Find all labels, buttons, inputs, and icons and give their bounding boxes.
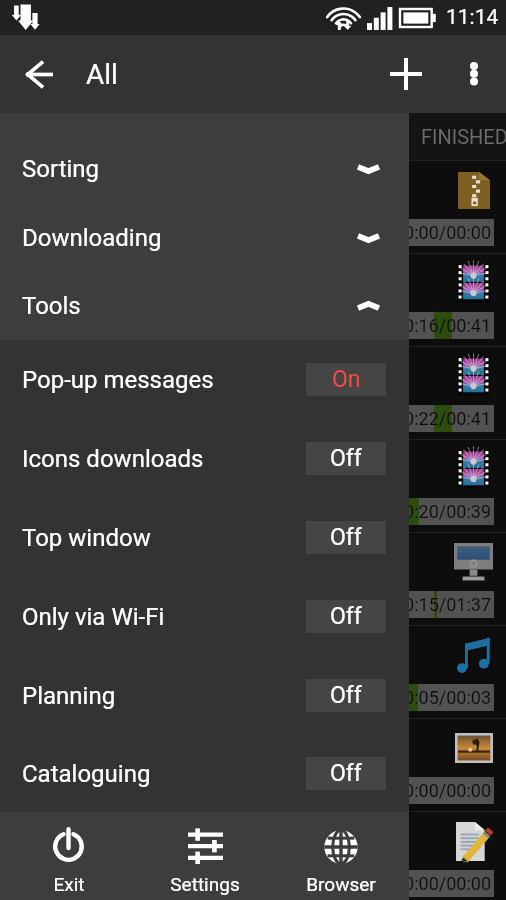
staticText: 00:05/00:03 (394, 687, 492, 708)
staticText: 00:20/00:39 (394, 501, 492, 522)
staticText: Off (330, 603, 362, 630)
button[interactable]: Pop-up messages (0, 340, 409, 419)
staticText: Downloading (22, 224, 162, 252)
button[interactable]: Cataloguing (0, 735, 409, 812)
staticText: Exit (53, 873, 85, 895)
button[interactable]: Only via Wi-Fi (0, 577, 409, 656)
staticText: Top window (22, 524, 151, 552)
staticText: 00:00/00:00 (394, 873, 492, 894)
button[interactable]: Sorting (0, 134, 409, 203)
button[interactable]: Downloading (0, 203, 409, 272)
staticText: Cataloguing (22, 760, 151, 788)
staticText: Only via Wi-Fi (22, 603, 165, 631)
staticText: Pop-up messages (22, 366, 214, 394)
staticText: Off (330, 760, 362, 787)
staticText: Sorting (22, 155, 100, 183)
staticText: Browser (306, 873, 376, 895)
staticText: On (332, 366, 361, 393)
staticText: Planning (22, 682, 116, 710)
button[interactable]: More options (445, 35, 502, 113)
button[interactable]: Add (377, 35, 434, 113)
staticText: Tools (22, 292, 81, 320)
button[interactable]: Tools (0, 272, 409, 340)
button[interactable]: Browser (273, 812, 409, 900)
staticText: 00:22/00:41 (394, 408, 492, 429)
button[interactable]: Planning (0, 656, 409, 735)
button[interactable]: Icons downloads (0, 419, 409, 498)
staticText: FINISHED (421, 125, 506, 148)
staticText: Off (330, 445, 362, 472)
staticText: Icons downloads (22, 445, 204, 473)
staticText: All (86, 58, 118, 91)
button[interactable]: Exit (0, 812, 137, 900)
staticText: Off (330, 524, 362, 551)
staticText: Off (330, 682, 362, 709)
staticText: 00:00/00:00 (394, 780, 492, 801)
staticText: 00:16/00:41 (394, 315, 492, 336)
staticText: Settings (170, 873, 240, 895)
staticText: 00:00/00:00 (394, 222, 492, 243)
button[interactable]: Settings (137, 812, 273, 900)
staticText: 11:14 (446, 5, 499, 30)
button[interactable]: Top window (0, 498, 409, 577)
staticText: 00:15/01:37 (394, 594, 492, 615)
button[interactable]: Back (0, 35, 78, 113)
